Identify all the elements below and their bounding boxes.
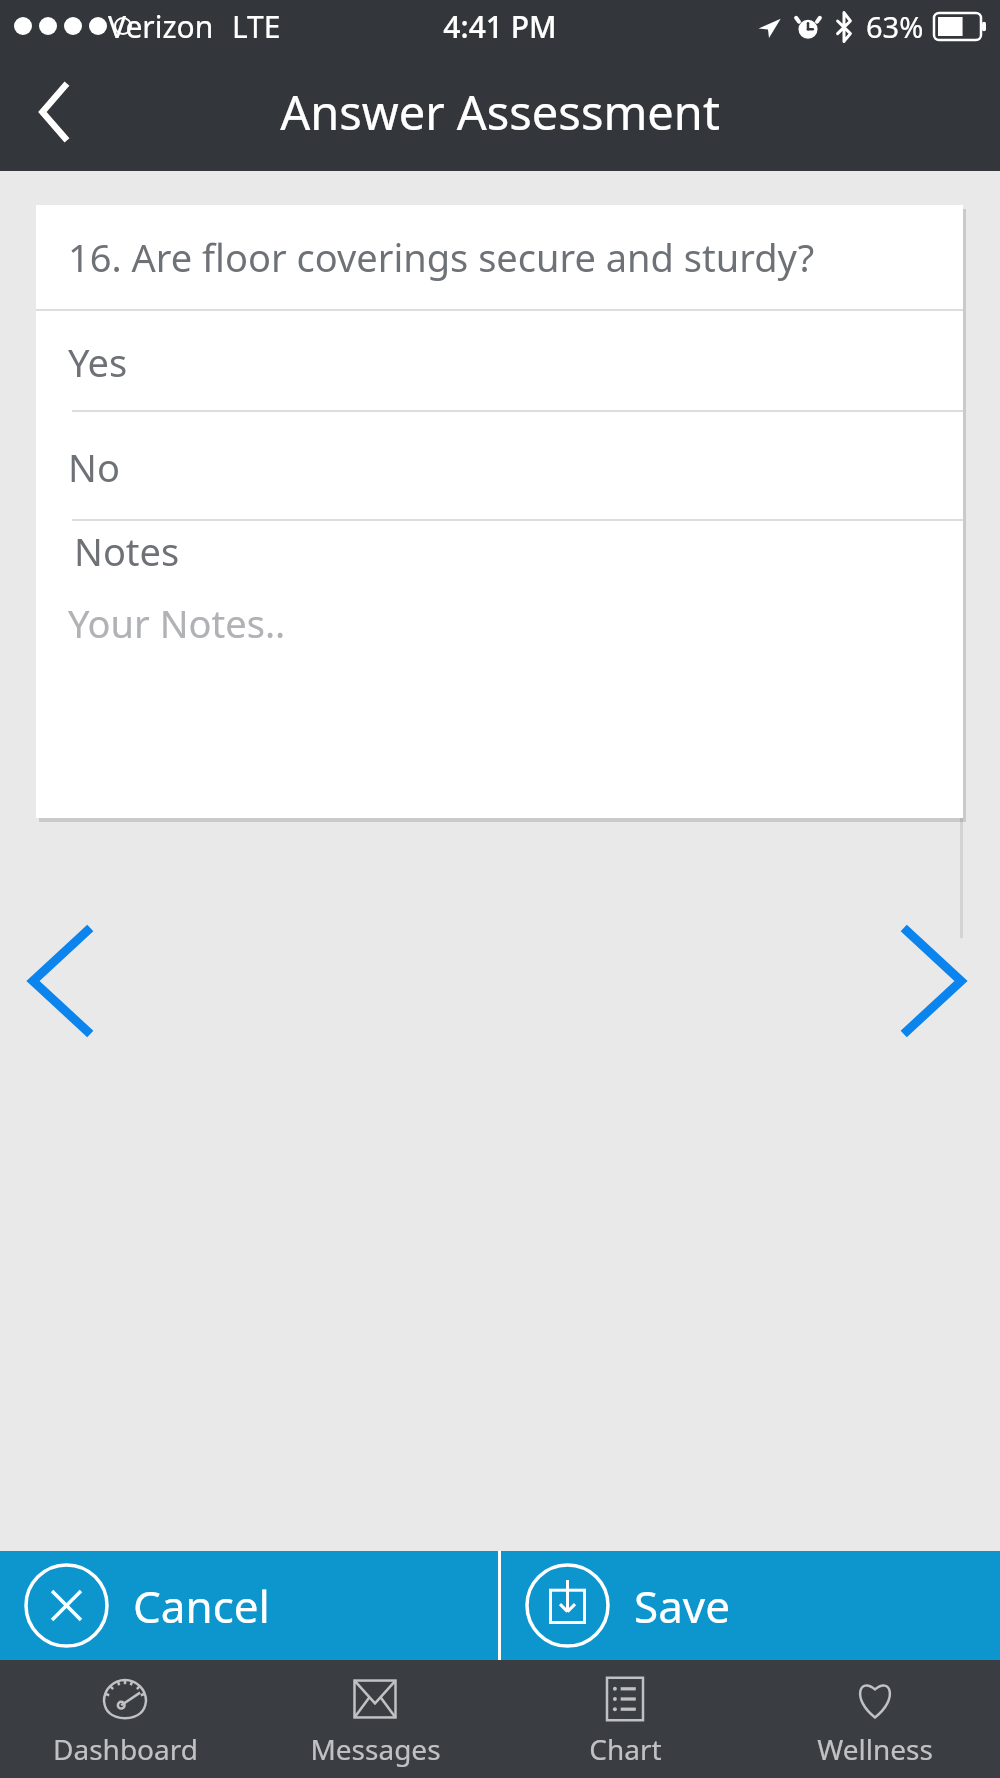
- staticText: Save: [634, 1576, 731, 1636]
- staticText: LTE: [232, 6, 281, 47]
- button[interactable]: Chart: [500, 1660, 750, 1778]
- staticText: Cancel: [133, 1576, 270, 1636]
- button[interactable]: Yes: [36, 311, 963, 412]
- button[interactable]: Next question: [874, 906, 994, 1056]
- button[interactable]: Dashboard: [0, 1660, 250, 1778]
- staticText: Answer Assessment: [280, 80, 720, 144]
- staticText: Notes: [74, 525, 180, 577]
- button[interactable]: Previous question: [0, 906, 120, 1056]
- button[interactable]: Your Notes..: [36, 581, 963, 818]
- button[interactable]: Back: [14, 67, 94, 157]
- button[interactable]: No: [36, 412, 963, 521]
- button[interactable]: Messages: [250, 1660, 500, 1778]
- staticText: 63%: [866, 7, 924, 46]
- staticText: 16. Are floor coverings secure and sturd…: [68, 231, 815, 283]
- staticText: Messages: [310, 1730, 441, 1768]
- button[interactable]: Cancel: [0, 1551, 498, 1660]
- staticText: No: [68, 441, 120, 493]
- staticText: Wellness: [817, 1730, 933, 1768]
- staticText: 4:41 PM: [443, 6, 557, 47]
- staticText: Your Notes..: [68, 597, 286, 649]
- staticText: Dashboard: [53, 1730, 198, 1768]
- staticText: Chart: [589, 1730, 662, 1768]
- staticText: Verizon: [108, 6, 214, 47]
- button[interactable]: Save: [501, 1551, 1000, 1660]
- button[interactable]: Wellness: [750, 1660, 1000, 1778]
- staticText: Yes: [68, 336, 128, 388]
